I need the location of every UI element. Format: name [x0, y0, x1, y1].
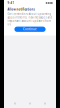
button[interactable]: Continue [14, 27, 46, 32]
button[interactable]: Profile [41, 99, 49, 108]
staticText: Allow notifications [7, 8, 34, 11]
staticText: Continue [23, 27, 37, 31]
button[interactable]: Search [26, 99, 34, 108]
button[interactable]: Home [11, 99, 19, 108]
staticText: Get reminders about upcoming appointment… [7, 12, 52, 26]
staticText: 9:41 [7, 1, 14, 5]
